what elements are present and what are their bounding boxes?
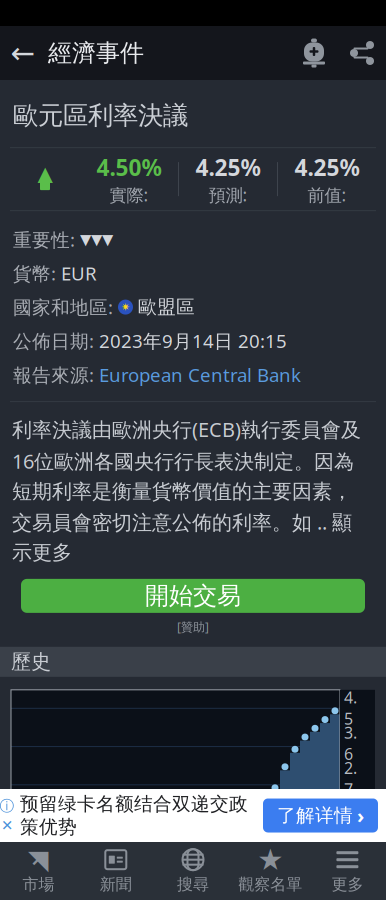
button[interactable]: Back [0, 26, 46, 80]
staticText: ↗ [30, 848, 47, 871]
staticText: ⓘ [0, 797, 14, 815]
button[interactable]: ◥ [0, 842, 77, 900]
staticText: 1.8 [344, 792, 357, 835]
staticText: 公佈日期: [13, 328, 94, 353]
button[interactable]: 開始交易 [21, 579, 365, 613]
staticText: 新聞 [100, 875, 132, 894]
staticText: 了解详情 [277, 804, 353, 827]
button[interactable]: 報告來源: [13, 362, 373, 387]
staticText: 重要性: [13, 227, 75, 252]
staticText: ★ [257, 843, 283, 876]
staticText: 實際: [109, 183, 148, 206]
button[interactable]: Ad info [0, 797, 14, 815]
staticText: 貨幣: [13, 261, 56, 286]
staticText: 3.6 [344, 722, 357, 764]
staticText: 利率決議由歐洲央行(ECB)執行委員會及16位歐洲各國央行行長表決制定。因為短期… [12, 416, 361, 565]
staticText: 4.5 [344, 687, 357, 729]
staticText: 國家和地區: [13, 295, 113, 319]
staticText: 市場 [23, 875, 55, 894]
staticText: › [357, 802, 364, 829]
staticText: 4.50% [96, 152, 161, 182]
button[interactable]: 搜尋 [154, 842, 232, 900]
staticText: 预留绿卡名额结合双递交政策优势 [20, 793, 248, 838]
button[interactable]: 了解详情 [263, 798, 378, 832]
staticText: 更多 [331, 875, 363, 894]
staticText: 0.9 [344, 828, 357, 870]
staticText: 2.7 [344, 757, 357, 800]
staticText: 預測: [208, 183, 247, 206]
staticText: ✷ [121, 301, 130, 313]
staticText: ◥ [28, 844, 49, 875]
staticText: 歐盟區 [138, 296, 195, 318]
staticText: 觀察名單 [238, 875, 302, 894]
staticText: EUR [61, 261, 97, 286]
staticText: ▼▼▼ [80, 231, 113, 248]
staticText: 經濟事件 [48, 38, 144, 68]
button[interactable]: Close ad [1, 817, 13, 834]
button[interactable]: Share [338, 26, 386, 80]
staticText: [贊助] [177, 619, 209, 635]
staticText: 歐元區利率決議 [13, 100, 188, 131]
button[interactable]: 經濟事件 [46, 26, 144, 80]
staticText: 搜尋 [177, 875, 209, 894]
staticText: 開始交易 [145, 581, 241, 611]
staticText: European Central Bank [99, 362, 301, 387]
staticText: 歷史 [11, 649, 51, 674]
button[interactable]: 新聞 [77, 842, 154, 900]
staticText: 4.25% [195, 152, 260, 182]
staticText: 2023年9月14日 20:15 [99, 328, 287, 353]
staticText: ▲ [37, 162, 52, 185]
staticText: 報告來源: [13, 362, 94, 387]
staticText: ✕ [1, 817, 13, 834]
staticText: ← [10, 36, 35, 70]
button[interactable]: ★ [232, 842, 309, 900]
staticText: 前值: [307, 183, 346, 206]
button[interactable]: Alert [290, 26, 338, 80]
button[interactable]: 更多 [309, 842, 386, 900]
staticText: 4.25% [294, 152, 359, 182]
